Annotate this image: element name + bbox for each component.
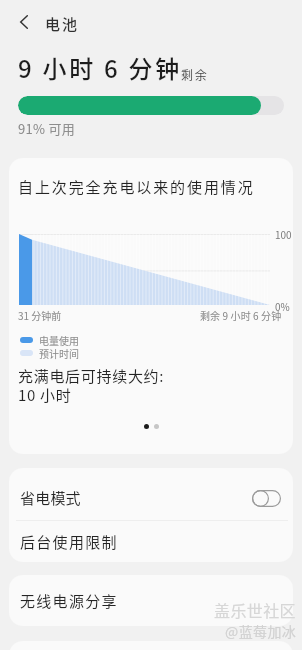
button[interactable]: Back	[10, 8, 38, 36]
staticText: 剩余 9 小时 6 分钟	[200, 308, 282, 322]
button[interactable]: 后台使用限制	[9, 521, 293, 562]
staticText: 预计时间	[39, 346, 79, 360]
staticText: 电池	[45, 13, 80, 35]
button[interactable]: 无线电源分享	[9, 575, 293, 626]
staticText: 省电模式	[20, 487, 81, 509]
staticText: 剩余	[181, 66, 209, 83]
staticText: 91% 可用	[18, 119, 76, 138]
staticText: 盖乐世社区	[214, 598, 297, 621]
staticText: 自上次完全充电以来的使用情况	[18, 176, 255, 198]
staticText: 0%	[275, 299, 290, 313]
staticText: 100	[275, 227, 292, 241]
staticText: 电量使用	[39, 333, 79, 347]
button[interactable]: 省电模式	[9, 468, 293, 520]
staticText: 31 分钟前	[18, 308, 62, 322]
staticText: @蓝莓加冰	[225, 621, 297, 641]
staticText: 无线电源分享	[20, 590, 118, 612]
staticText: 10 小时	[18, 384, 72, 406]
staticText: 9 小时 6 分钟	[18, 50, 182, 85]
staticText: 后台使用限制	[20, 531, 118, 553]
staticText: 充满电后可持续大约:	[18, 365, 165, 387]
